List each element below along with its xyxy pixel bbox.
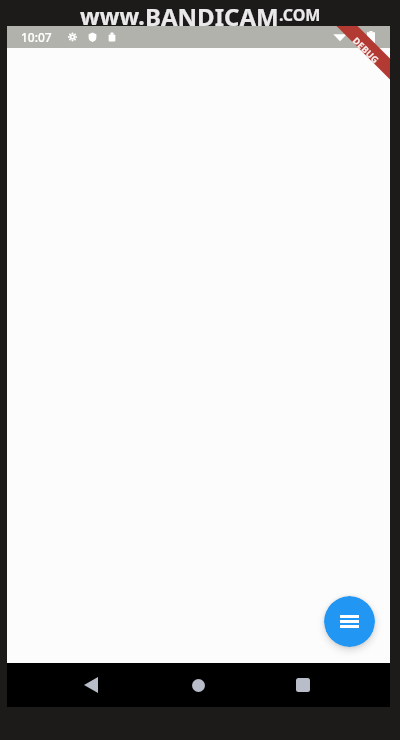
staticText: DEBUG — [351, 34, 382, 66]
button[interactable]: Menu — [324, 596, 375, 647]
button[interactable]: Home — [176, 663, 220, 707]
button[interactable]: Back — [69, 663, 113, 707]
staticText: BANDICAM — [145, 0, 279, 26]
staticText: .COM — [279, 4, 321, 26]
staticText: www. — [80, 0, 145, 26]
button[interactable]: Recents — [281, 663, 325, 707]
staticText: 10:07 — [21, 29, 52, 45]
